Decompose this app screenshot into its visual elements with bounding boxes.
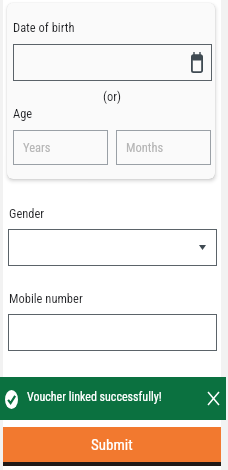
staticText: Years	[23, 140, 51, 155]
staticText: Voucher linked successfully!	[27, 390, 162, 404]
staticText: Gender	[9, 206, 45, 221]
staticText: Submit	[91, 436, 133, 454]
button[interactable]: Dismiss	[203, 388, 223, 408]
button[interactable]: Months	[116, 130, 211, 165]
button[interactable]: Date of birth	[13, 44, 212, 81]
button[interactable]: Years	[13, 130, 108, 165]
staticText: Age	[13, 106, 33, 121]
button[interactable]: Mobile number	[8, 314, 217, 351]
button[interactable]: Voucher linked successfully!	[0, 377, 226, 420]
button[interactable]: Gender	[8, 229, 217, 266]
staticText: Months	[126, 140, 164, 155]
staticText: Date of birth	[13, 20, 75, 35]
staticText: Mobile number	[9, 291, 83, 306]
button[interactable]: Submit	[3, 427, 221, 462]
staticText: (or)	[97, 89, 127, 104]
